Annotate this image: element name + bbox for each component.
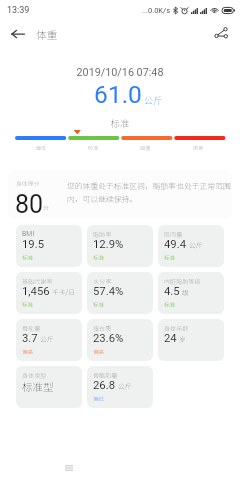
button[interactable]: BMI (16, 225, 82, 267)
staticText: 偏低 (15, 144, 67, 152)
button[interactable]: 身体年龄 (158, 319, 224, 361)
staticText: 标准 (0, 116, 240, 130)
staticText: 1,456 (22, 285, 50, 298)
staticText: 分 (43, 203, 49, 211)
staticText: 公斤 (144, 93, 163, 106)
button[interactable]: Share (210, 23, 232, 45)
staticText: 超重 (119, 144, 172, 152)
staticText: 千卡/日 (52, 287, 76, 297)
staticText: 骨骼肌量 (93, 371, 118, 380)
button[interactable]: 身体类型 (16, 366, 82, 408)
button[interactable]: Back (7, 23, 29, 45)
staticText: 偏高 (22, 348, 34, 356)
staticText: 24 (164, 332, 177, 345)
staticText: 49.4 (164, 238, 187, 251)
staticText: 肌肉量 (164, 230, 183, 239)
button[interactable]: 内脏脂肪等级 (158, 272, 224, 314)
staticText: 蛋白质 (93, 324, 112, 333)
staticText: 19.5 (22, 238, 45, 251)
staticText: 标准 (164, 254, 176, 262)
button[interactable]: 骨骼肌量 (87, 366, 153, 408)
staticText: 80 (15, 190, 44, 218)
staticText: 标准 (164, 301, 176, 309)
staticText: ...0.0K/s (142, 6, 171, 15)
staticText: 12.9% (93, 238, 124, 251)
button[interactable]: 身体得分 (8, 170, 232, 218)
staticText: 公斤 (189, 240, 203, 250)
staticText: 标准 (22, 254, 34, 262)
button[interactable]: 水分率 (87, 272, 153, 314)
staticText: 标准 (93, 254, 105, 262)
staticText: 4.5 (164, 285, 180, 298)
staticText: 水分率 (93, 277, 112, 286)
staticText: 3.7 (22, 332, 38, 345)
button[interactable]: 骨盐量 (16, 319, 82, 361)
staticText: 您的体重处于标准区间，脂肪率也处于正常范围内，可以继续保持。 (67, 180, 232, 205)
staticText: 身体得分 (16, 179, 40, 187)
staticText: 身体类型 (22, 371, 47, 380)
staticText: 标准 (93, 301, 105, 309)
staticText: 内脏脂肪等级 (164, 277, 201, 286)
staticText: 脂肪率 (93, 230, 112, 239)
staticText: 标准 (22, 301, 34, 309)
staticText: 2019/10/16 07:48 (0, 66, 240, 79)
staticText: 偏低 (93, 395, 105, 403)
staticText: 标准 (67, 144, 119, 152)
staticText: BMI (22, 230, 35, 238)
staticText: 级 (182, 287, 189, 297)
button[interactable]: 脂肪率 (87, 225, 153, 267)
button[interactable]: 基础代谢率 (16, 272, 82, 314)
staticText: 公斤 (40, 334, 54, 344)
button[interactable]: 肌肉量 (158, 225, 224, 267)
staticText: 57.4% (93, 285, 124, 298)
staticText: 23.6% (93, 332, 124, 345)
button[interactable]: Recents (62, 461, 76, 475)
staticText: 13:39 (7, 5, 30, 16)
staticText: 体重 (36, 26, 58, 42)
button[interactable]: 蛋白质 (87, 319, 153, 361)
staticText: 身体年龄 (164, 324, 189, 333)
staticText: 偏高 (93, 348, 105, 356)
staticText: 公斤 (118, 381, 132, 391)
staticText: 骨盐量 (22, 324, 41, 333)
staticText: 26.8 (93, 379, 116, 392)
staticText: 61.0 (0, 80, 238, 109)
staticText: 肥胖 (172, 144, 225, 152)
staticText: 基础代谢率 (22, 277, 53, 286)
staticText: 标准型 (22, 379, 54, 394)
staticText: 岁 (179, 334, 186, 344)
